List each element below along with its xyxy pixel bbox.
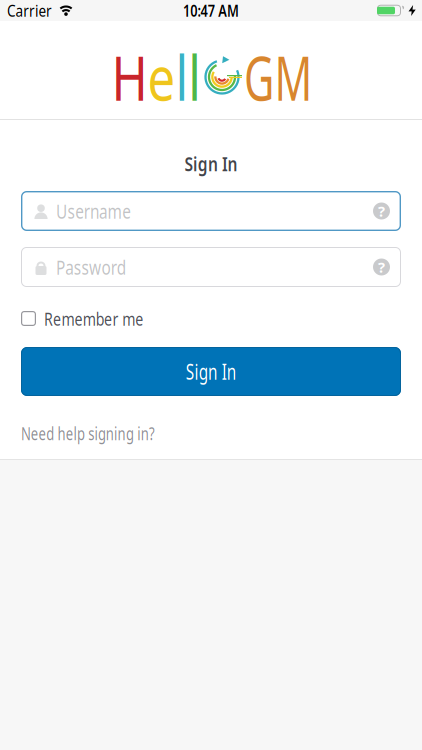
staticText: Need help signing in? — [21, 421, 212, 445]
staticText: Remember me — [44, 306, 175, 331]
staticText: Sign In — [177, 150, 245, 177]
staticText: Password — [56, 254, 147, 280]
staticText: 10:47 AM — [176, 0, 246, 21]
button[interactable]: Help — [373, 257, 390, 277]
staticText: H — [89, 36, 134, 118]
button[interactable]: Need help signing in? — [21, 421, 212, 445]
staticText: ? — [378, 201, 385, 221]
staticText: GM — [244, 36, 345, 118]
button[interactable]: Sign In — [21, 347, 401, 396]
staticText: ? — [378, 257, 385, 277]
staticText: e — [134, 36, 169, 118]
staticText: Carrier — [7, 0, 60, 21]
button[interactable]: Remember me — [21, 306, 175, 331]
staticText: l — [169, 36, 185, 118]
staticText: Username — [56, 198, 153, 224]
staticText: l — [185, 36, 201, 118]
button[interactable]: Help — [373, 201, 390, 221]
staticText: Sign In — [176, 357, 246, 386]
